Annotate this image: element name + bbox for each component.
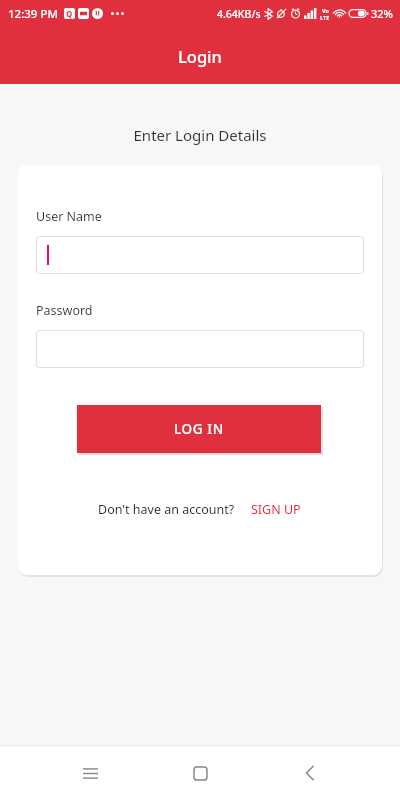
staticText: Don't have an account?: [98, 501, 235, 518]
staticText: User Name: [36, 208, 102, 225]
staticText: SIGN UP: [251, 501, 301, 518]
staticText: LTE: [320, 14, 330, 21]
staticText: LOG IN: [174, 420, 224, 438]
button[interactable]: [36, 330, 364, 368]
staticText: Q: [66, 8, 73, 19]
button[interactable]: SIGN UP: [249, 498, 303, 521]
button[interactable]: Recent apps: [67, 750, 113, 796]
staticText: Login: [178, 45, 222, 67]
button[interactable]: [36, 236, 364, 274]
staticText: 32%: [371, 6, 393, 21]
button[interactable]: LOG IN: [77, 405, 321, 453]
staticText: Enter Login Details: [0, 125, 400, 145]
button[interactable]: Back: [287, 750, 333, 796]
staticText: Vo: [322, 7, 329, 14]
staticText: Password: [36, 302, 93, 319]
staticText: 4.64KB/s: [217, 7, 261, 21]
button[interactable]: Home: [177, 750, 223, 796]
staticText: 12:39 PM: [8, 6, 59, 22]
